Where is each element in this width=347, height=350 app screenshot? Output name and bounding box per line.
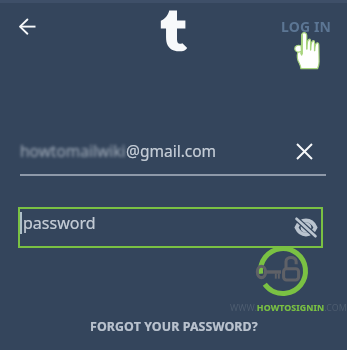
other: Show password [296,217,316,237]
button[interactable]: Back [6,12,35,41]
staticText: howtomailwiki [20,140,126,161]
staticText: @gmail.com [126,140,217,161]
staticText: password [23,212,96,234]
staticText: LOG IN [281,17,332,36]
button[interactable]: password [18,207,323,248]
staticText: WWW.HOWTOSIGNIN.COM [230,302,347,314]
staticText: FORGOT YOUR PASSWORD? [90,318,258,335]
button[interactable]: FORGOT YOUR PASSWORD? [82,315,266,338]
button[interactable]: LOG IN [275,13,338,40]
button[interactable]: Clear [292,139,316,163]
